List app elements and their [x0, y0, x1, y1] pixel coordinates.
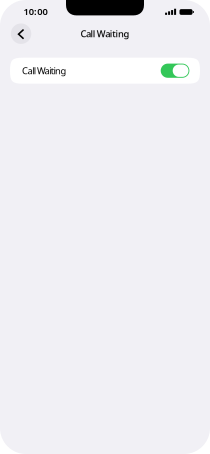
- staticText: 10:00: [23, 5, 48, 18]
- button[interactable]: Back: [11, 23, 31, 44]
- staticText: Call Waiting: [22, 64, 67, 77]
- staticText: Call Waiting: [80, 27, 129, 40]
- button[interactable]: Call Waiting: [10, 58, 200, 84]
